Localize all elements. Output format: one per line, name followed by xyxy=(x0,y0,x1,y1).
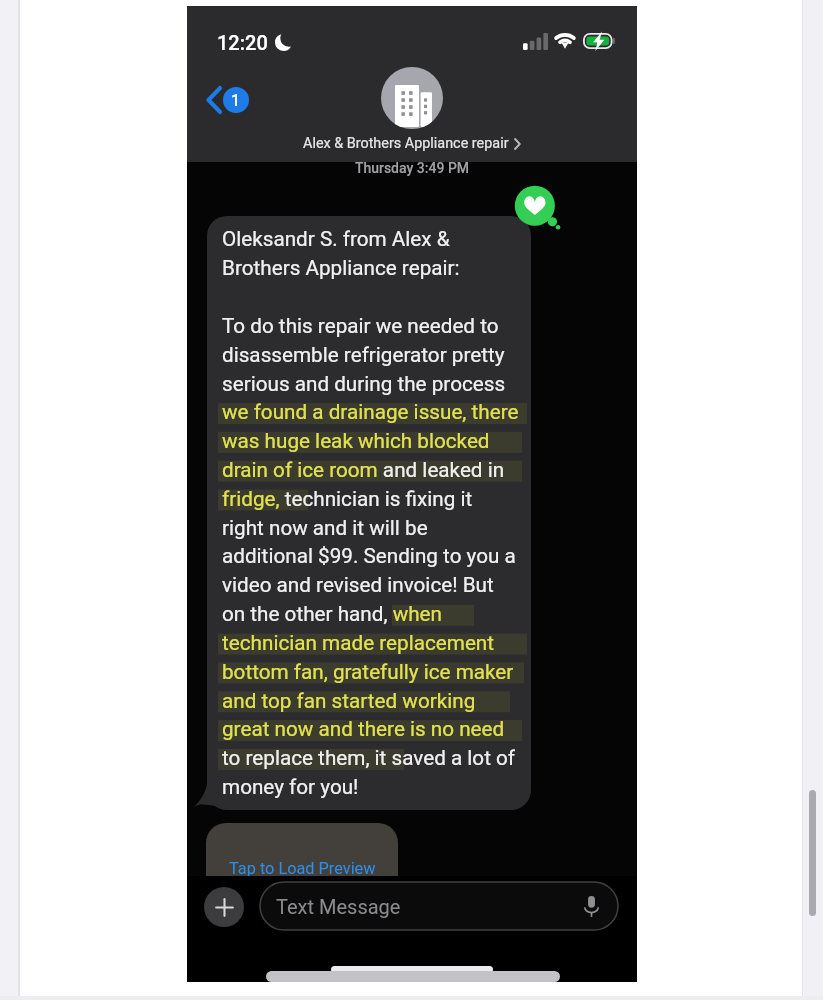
staticText: on the other hand, when xyxy=(222,602,442,626)
button[interactable]: Add attachment xyxy=(204,887,244,927)
staticText: Brothers Appliance repair: xyxy=(222,256,460,280)
staticText: Alex & Brothers Appliance repair xyxy=(303,135,509,152)
staticText: fridge, technician is fixing it xyxy=(222,487,473,511)
staticText: Text Message xyxy=(276,895,401,918)
other: Dictate xyxy=(584,896,599,917)
button[interactable]: Tap to Load Preview xyxy=(206,823,398,876)
staticText: right now and it will be xyxy=(222,516,428,540)
button[interactable] xyxy=(260,882,618,930)
staticText: we found a drainage issue, there xyxy=(222,400,519,424)
staticText: technician made replacement xyxy=(222,631,495,655)
staticText: and top fan started working xyxy=(222,689,476,713)
staticText: video and revised invoice! But xyxy=(222,573,494,597)
staticText: money for you! xyxy=(222,775,359,799)
staticText: additional $99. Sending to you a xyxy=(222,544,516,568)
staticText: to replace them, it saved a lot of xyxy=(222,746,516,770)
staticText: serious and during the process xyxy=(222,372,506,396)
staticText: Oleksandr S. from Alex & xyxy=(222,227,450,251)
button[interactable]: Oleksandr S. from Alex & xyxy=(207,216,531,810)
staticText: great now and there is no need xyxy=(222,717,505,741)
button[interactable]: Alex & Brothers Appliance repair xyxy=(187,67,637,152)
staticText: Thursday 3:49 PM xyxy=(187,160,637,176)
staticText: disassemble refrigerator pretty xyxy=(222,343,505,367)
staticText: 1 xyxy=(231,91,241,110)
staticText: To do this repair we needed to xyxy=(222,314,499,338)
staticText: bottom fan, gratefully ice maker xyxy=(222,660,514,684)
staticText: Tap to Load Preview xyxy=(229,859,376,876)
staticText: was huge leak which blocked xyxy=(222,429,490,453)
staticText: drain of ice room and leaked in xyxy=(222,458,505,482)
button[interactable]: Back, 1 unread xyxy=(200,80,254,120)
staticText: 12:20 xyxy=(217,31,268,54)
